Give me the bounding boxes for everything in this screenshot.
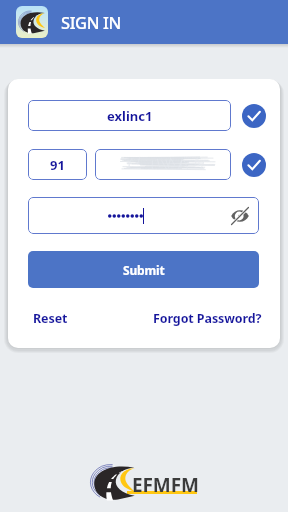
button[interactable]: Forgot Password?: [148, 305, 267, 332]
button[interactable]: [95, 149, 231, 180]
button[interactable]: Verified: [242, 153, 266, 177]
button[interactable]: Reset: [28, 305, 73, 332]
button[interactable]: exlinc1: [28, 100, 231, 131]
button[interactable]: Show password: [28, 197, 259, 234]
staticText: exlinc1: [107, 107, 153, 125]
staticText: Reset: [33, 310, 68, 327]
staticText: Submit: [123, 262, 165, 278]
button[interactable]: Show password: [222, 197, 257, 234]
staticText: EFMFM: [132, 472, 199, 498]
button[interactable]: EFMFM logo: [16, 6, 48, 38]
button[interactable]: Submit: [28, 251, 259, 288]
button[interactable]: Verified: [242, 104, 266, 128]
staticText: SIGN IN: [61, 11, 121, 33]
staticText: Forgot Password?: [153, 310, 262, 327]
button[interactable]: 91: [28, 149, 87, 180]
staticText: 91: [50, 156, 65, 174]
